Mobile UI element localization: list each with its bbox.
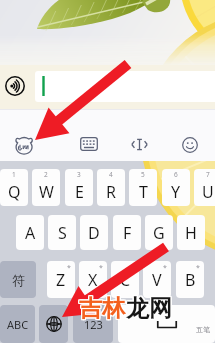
staticText: E (75, 181, 84, 203)
staticText: 6 (174, 170, 178, 179)
button[interactable]: G (145, 215, 173, 250)
button[interactable]: C (111, 261, 139, 298)
button[interactable]: Voice input (3, 74, 27, 98)
button[interactable]: Switch language (39, 305, 68, 343)
staticText: 龙网 (125, 293, 171, 322)
staticText: 龙网 (126, 295, 172, 324)
staticText: 龙网 (127, 295, 173, 324)
button[interactable]: 7 (194, 169, 215, 206)
staticText: 4 (109, 170, 113, 179)
button[interactable]: 5 (129, 169, 157, 206)
button[interactable]: Emoji (176, 131, 204, 159)
staticText: 龙网 (127, 294, 173, 323)
staticText: F (123, 222, 132, 244)
staticText: * (196, 263, 200, 273)
staticText: * (99, 263, 103, 273)
button[interactable]: D (80, 215, 108, 250)
button[interactable]: 2 (32, 169, 60, 206)
staticText: Y (171, 181, 181, 203)
button[interactable]: 4 (97, 169, 125, 206)
staticText: 吉林 (78, 293, 124, 322)
staticText: 7 (206, 170, 210, 179)
staticText: 123 (84, 317, 103, 332)
staticText: 吉林 (79, 295, 125, 324)
staticText: H (185, 222, 197, 244)
staticText: 1 (12, 170, 16, 179)
staticText: W (39, 181, 54, 203)
staticText: X (88, 269, 98, 291)
staticText: 龙网 (126, 294, 172, 323)
staticText: C (120, 269, 131, 291)
staticText: G (153, 222, 165, 244)
staticText: 符 (12, 272, 25, 288)
button[interactable]: Keyboard settings (74, 131, 104, 157)
staticText: 吉林 (80, 293, 126, 322)
staticText: 吉林 (78, 295, 124, 324)
staticText: 3 (77, 170, 81, 179)
button[interactable]: Z (47, 261, 75, 298)
button[interactable]: ABC (0, 305, 35, 343)
staticText: 吉林 (80, 294, 126, 323)
staticText: 龙网 (125, 294, 171, 323)
staticText: 吉林 (79, 294, 125, 323)
staticText: R (106, 181, 116, 203)
button[interactable]: 6 (162, 169, 190, 206)
staticText: 5 (141, 170, 145, 179)
button[interactable]: X (79, 261, 107, 298)
button[interactable] (35, 71, 215, 102)
staticText: V (152, 269, 162, 291)
staticText: S (58, 222, 67, 244)
staticText: * (67, 263, 71, 273)
button[interactable]: S (48, 215, 76, 250)
button[interactable]: 123 (73, 305, 113, 343)
staticText: T (139, 181, 148, 203)
staticText: * (163, 263, 167, 273)
staticText: 龙网 (127, 293, 173, 322)
button[interactable]: 1 (0, 169, 28, 206)
button[interactable]: H (177, 215, 205, 250)
button[interactable]: Baidu input method (8, 130, 40, 161)
staticText: 吉林 (78, 294, 124, 323)
staticText: U (202, 181, 214, 203)
staticText: 龙网 (126, 293, 172, 322)
staticText: 吉林 (79, 293, 125, 322)
button[interactable]: F (113, 215, 141, 250)
staticText: ABC (7, 317, 29, 332)
button[interactable]: Space (118, 305, 215, 343)
button[interactable]: A (16, 215, 44, 250)
staticText: B (185, 269, 196, 291)
button[interactable]: 3 (65, 169, 93, 206)
button[interactable]: V (143, 261, 171, 298)
staticText: 五笔 (196, 325, 210, 334)
staticText: 龙网 (125, 295, 171, 324)
staticText: Q (8, 181, 21, 203)
staticText: * (131, 263, 135, 273)
staticText: A (25, 222, 36, 244)
button[interactable]: B (176, 261, 204, 298)
staticText: Z (56, 269, 66, 291)
button[interactable]: 符 (0, 261, 36, 298)
staticText: 吉林 (80, 295, 126, 324)
staticText: 2 (44, 170, 48, 179)
button[interactable]: Move cursor (125, 130, 154, 159)
staticText: D (88, 222, 100, 244)
